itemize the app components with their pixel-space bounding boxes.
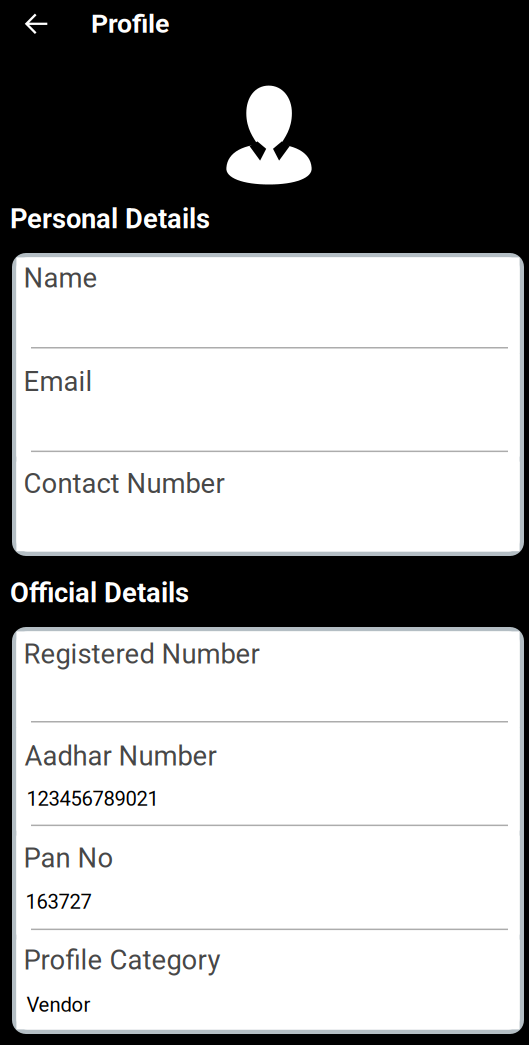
staticText: Name <box>23 262 97 294</box>
staticText: Profile <box>91 8 169 39</box>
button[interactable]: Profile photo <box>227 85 313 185</box>
button[interactable]: Back <box>0 0 70 48</box>
staticText: Pan No <box>23 842 113 874</box>
button[interactable]: Contact Number <box>16 462 520 551</box>
button[interactable]: Registered Number <box>16 631 520 727</box>
staticText: Personal Details <box>10 203 210 235</box>
staticText: 123456789021 <box>26 787 158 811</box>
button[interactable]: Name <box>16 257 520 353</box>
staticText: Vendor <box>26 993 90 1017</box>
staticText: Email <box>23 366 92 398</box>
staticText: Official Details <box>10 577 189 609</box>
button[interactable]: Aadhar Number <box>16 728 520 831</box>
button[interactable]: Email <box>16 354 520 457</box>
staticText: Contact Number <box>23 468 224 500</box>
button[interactable]: Profile Category <box>16 940 520 1029</box>
staticText: Profile Category <box>23 944 220 976</box>
button[interactable]: Pan No <box>16 836 520 935</box>
staticText: Registered Number <box>23 638 259 670</box>
staticText: Aadhar Number <box>24 740 216 772</box>
staticText: 163727 <box>25 890 91 914</box>
